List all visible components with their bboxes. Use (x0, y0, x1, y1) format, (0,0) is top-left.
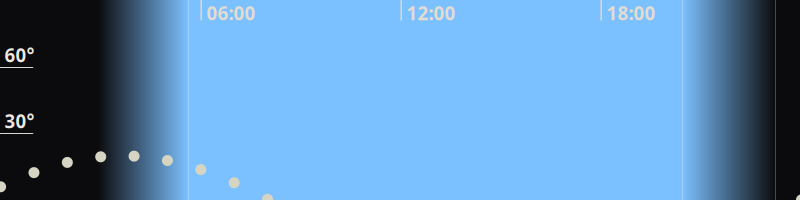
staticText: 18:00 (606, 1, 655, 25)
staticText: 06:00 (206, 1, 255, 25)
staticText: 30° (4, 109, 34, 133)
staticText: 12:00 (406, 1, 455, 25)
staticText: 60° (4, 43, 34, 67)
